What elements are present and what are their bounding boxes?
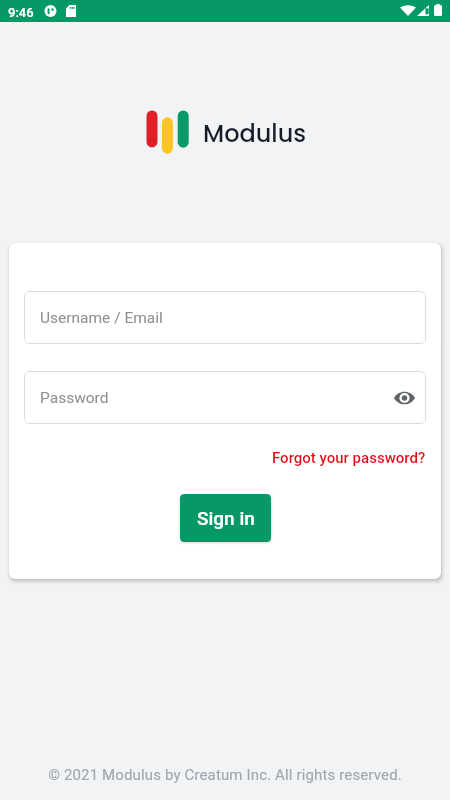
other: Mobile signal <box>417 5 429 16</box>
staticText: Username / Email <box>40 309 163 327</box>
button[interactable]: Show password <box>391 385 417 411</box>
staticText: Modulus <box>203 117 307 151</box>
other: Storage <box>66 5 76 17</box>
button[interactable]: Sign in <box>180 494 271 542</box>
other: Notification <box>44 5 57 17</box>
other: Battery <box>434 4 442 16</box>
staticText: Password <box>40 389 109 407</box>
button[interactable]: Username / Email <box>24 291 426 344</box>
staticText: © 2021 Modulus by Creatum Inc. All right… <box>0 766 450 784</box>
button[interactable]: Password <box>24 371 426 424</box>
staticText: Forgot your password? <box>272 449 426 467</box>
staticText: 9:46 <box>8 5 34 20</box>
button[interactable]: Forgot your password? <box>9 446 426 470</box>
other: Wi-Fi <box>400 5 416 16</box>
staticText: Sign in <box>197 507 255 529</box>
